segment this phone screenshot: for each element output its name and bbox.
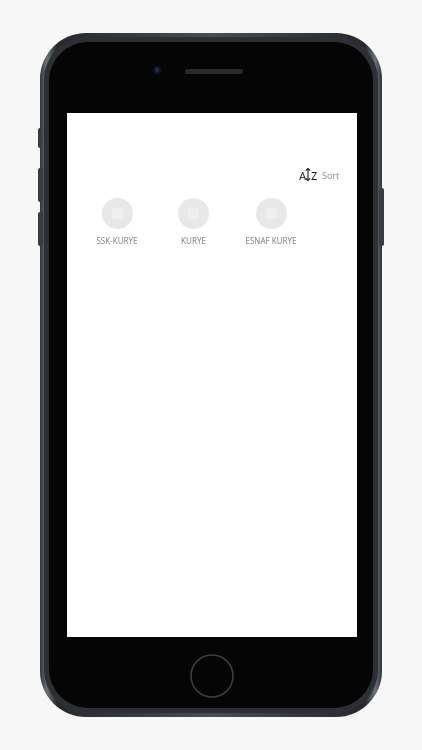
- staticText: KURYE: [181, 235, 206, 246]
- staticText: A: [299, 168, 307, 181]
- staticText: Sort: [322, 169, 340, 181]
- staticText: Z: [311, 168, 317, 181]
- button[interactable]: KURYE: [155, 196, 231, 248]
- button[interactable]: SSK-KURYE: [79, 196, 155, 248]
- staticText: SSK-KURYE: [96, 235, 138, 246]
- other: Home: [190, 654, 234, 698]
- button[interactable]: A: [296, 165, 343, 184]
- button[interactable]: ESNAF KURYE: [231, 196, 311, 248]
- staticText: ESNAF KURYE: [245, 235, 297, 246]
